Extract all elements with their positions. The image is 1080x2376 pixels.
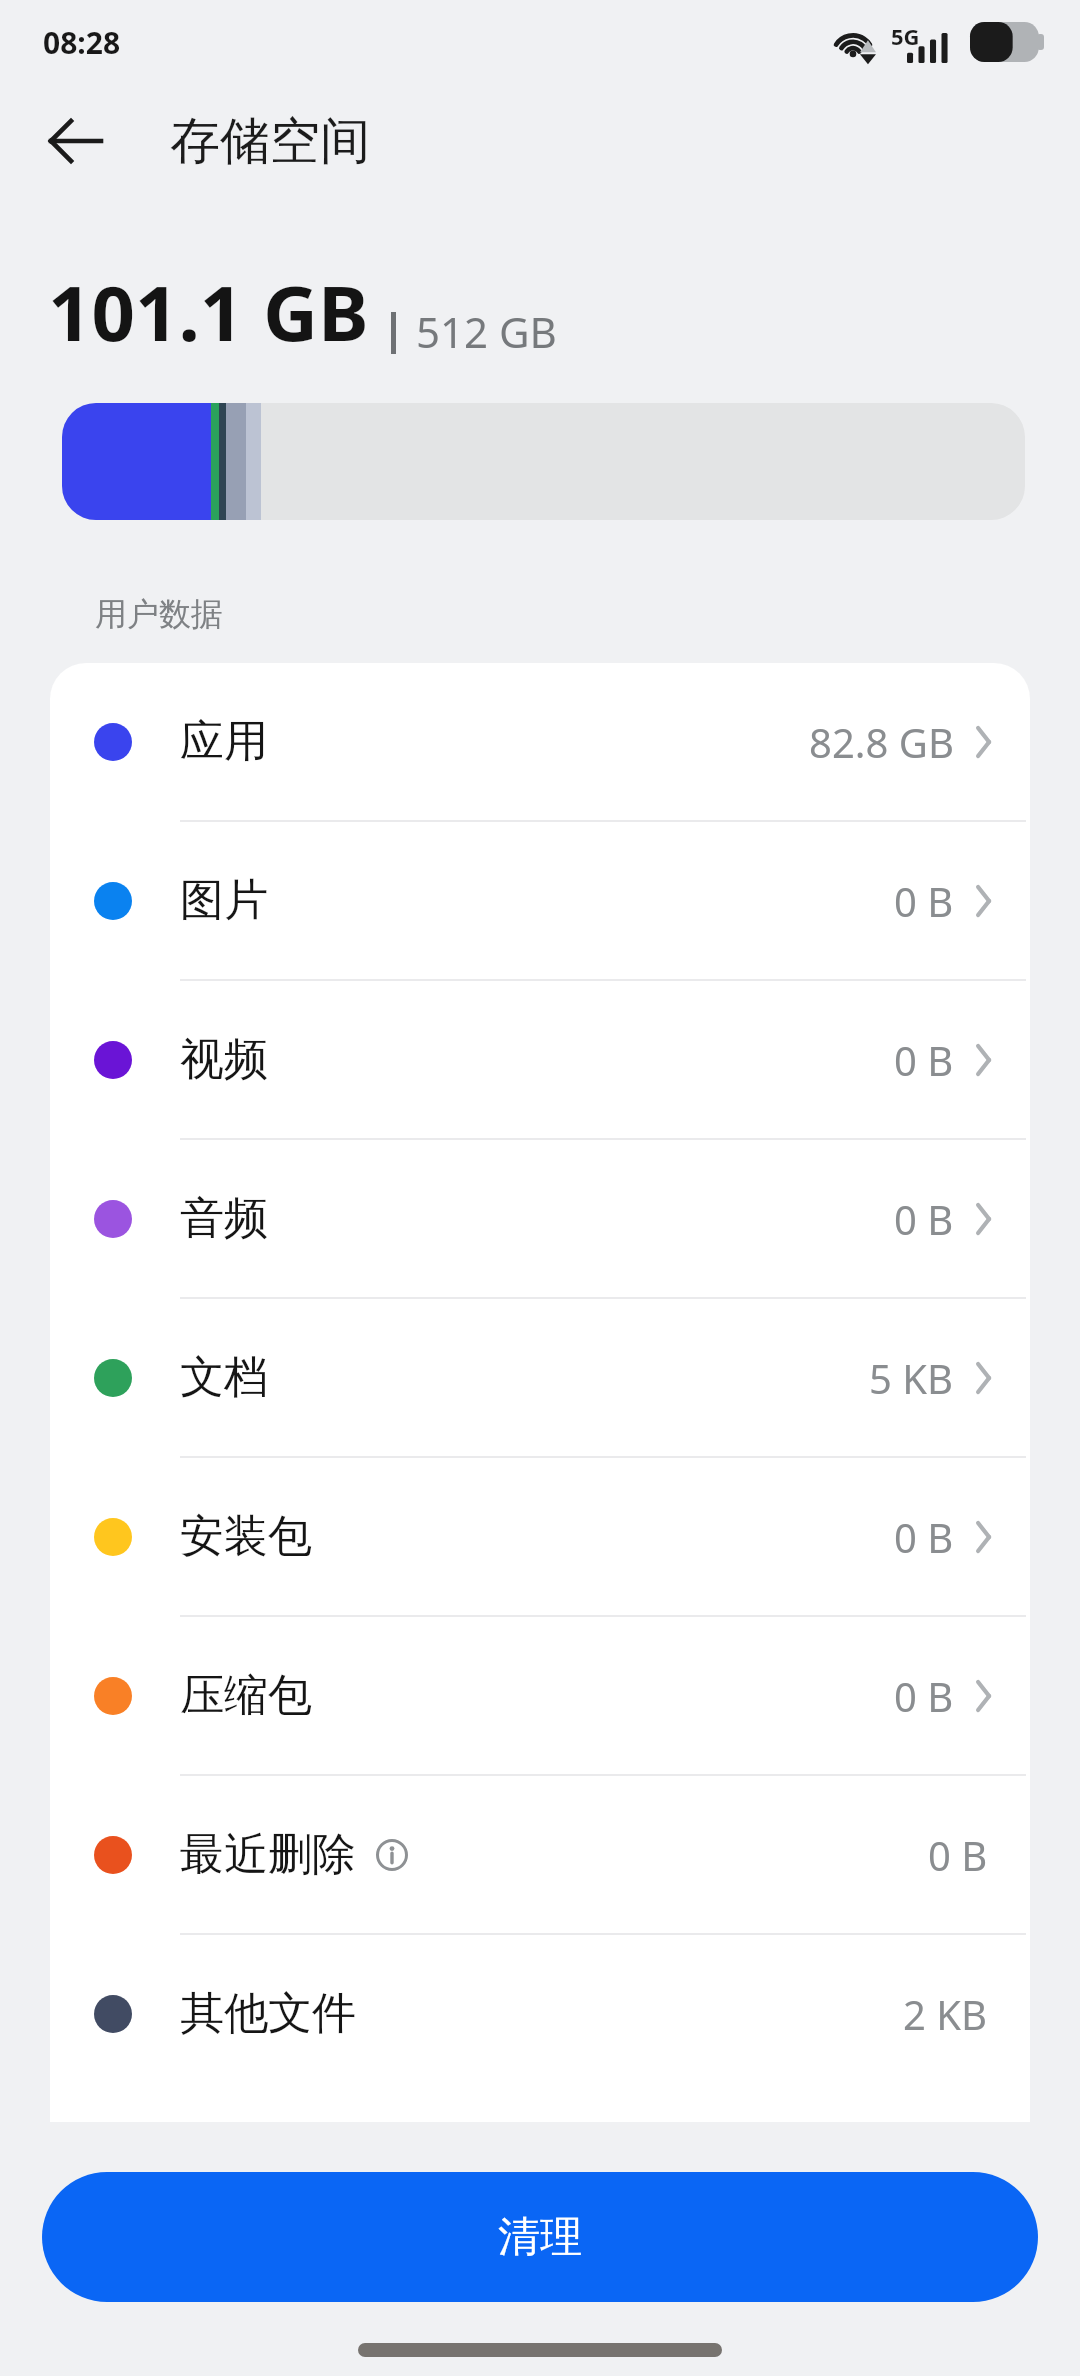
- staticText: 512 GB: [416, 303, 557, 360]
- staticText: 0 B: [894, 1669, 954, 1723]
- button[interactable]: 应用: [50, 663, 1030, 820]
- staticText: 安装包: [180, 1509, 312, 1564]
- staticText: 用户数据: [95, 594, 223, 634]
- button[interactable]: 压缩包: [50, 1617, 1030, 1774]
- staticText: 0 B: [928, 1828, 988, 1882]
- staticText: 101.1 GB: [48, 260, 369, 364]
- staticText: 2 KB: [903, 1987, 988, 2041]
- button[interactable]: 文档: [50, 1299, 1030, 1456]
- staticText: 视频: [180, 1032, 268, 1087]
- button[interactable]: 视频: [50, 981, 1030, 1138]
- staticText: 0 B: [894, 1033, 954, 1087]
- button[interactable]: 安装包: [50, 1458, 1030, 1615]
- staticText: 0 B: [894, 1192, 954, 1246]
- button[interactable]: 音频: [50, 1140, 1030, 1297]
- staticText: 5 KB: [869, 1351, 954, 1405]
- staticText: 其他文件: [180, 1986, 356, 2041]
- staticText: 08:28: [43, 22, 121, 63]
- button[interactable]: 图片: [50, 822, 1030, 979]
- staticText: 存储空间: [170, 110, 370, 173]
- staticText: 图片: [180, 873, 268, 928]
- staticText: 0 B: [894, 1510, 954, 1564]
- staticText: 82.8 GB: [809, 715, 954, 769]
- staticText: 0 B: [894, 874, 954, 928]
- staticText: 5G: [891, 21, 920, 51]
- button[interactable]: 清理: [42, 2172, 1038, 2302]
- staticText: 文档: [180, 1350, 268, 1405]
- staticText: 清理: [498, 2211, 582, 2264]
- button[interactable]: 其他文件: [50, 1935, 1030, 2092]
- button[interactable]: 最近删除: [50, 1776, 1030, 1933]
- staticText: 音频: [180, 1191, 268, 1246]
- staticText: 压缩包: [180, 1668, 312, 1723]
- staticText: 应用: [180, 714, 268, 769]
- button[interactable]: Back: [28, 93, 124, 189]
- staticText: 最近删除: [180, 1827, 356, 1882]
